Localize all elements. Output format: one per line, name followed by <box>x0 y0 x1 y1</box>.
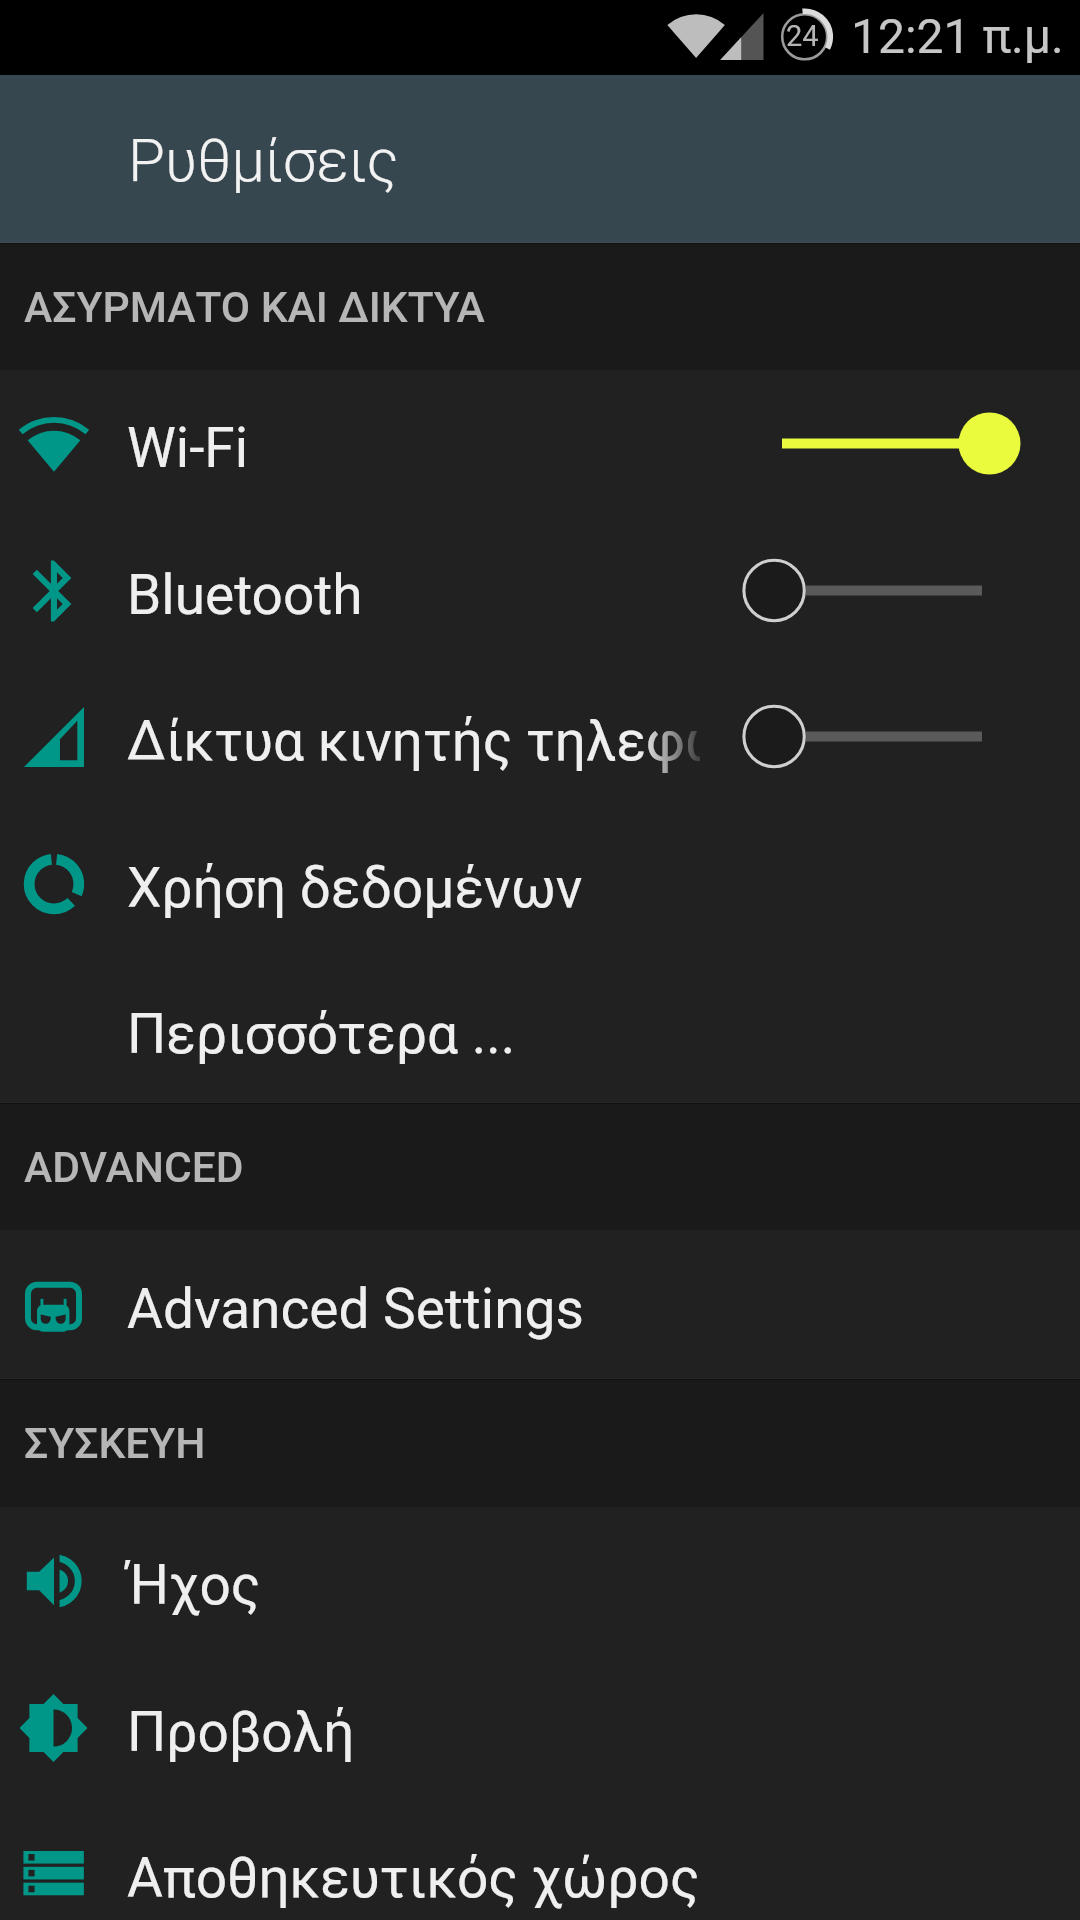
staticText: Χρήση δεδομένων <box>127 856 583 920</box>
staticText: Δίκτυα κινητής τηλεφωνίας <box>127 709 700 773</box>
button[interactable]: Χρήση δεδομένων <box>0 810 1080 957</box>
staticText: 12:21 π.μ. <box>851 8 1064 64</box>
button[interactable]: Ήχος <box>0 1507 1080 1654</box>
staticText: Αποθηκευτικός χώρος <box>127 1846 700 1910</box>
staticText: Bluetooth <box>127 563 363 627</box>
button[interactable]: Περισσότερα ... <box>0 956 1080 1103</box>
staticText: Wi-Fi <box>127 416 249 480</box>
button[interactable]: Toggle off <box>750 517 1080 664</box>
staticText: Ήχος <box>127 1553 261 1617</box>
button[interactable]: Αποθηκευτικός χώρος <box>0 1800 1080 1920</box>
staticText: Προβολή <box>127 1700 355 1764</box>
staticText: ΑΣΥΡΜΑΤΟ ΚΑΙ ΔΙΚΤΥΑ <box>24 283 485 333</box>
staticText: Ρυθμίσεις <box>128 125 399 195</box>
button[interactable]: Ρυθμίσεις <box>0 75 1080 243</box>
staticText: 24 <box>786 19 819 53</box>
button[interactable]: Bluetooth <box>0 517 1080 664</box>
staticText: Περισσότερα ... <box>127 1002 516 1066</box>
button[interactable]: Toggle on <box>750 370 1080 517</box>
button[interactable]: Advanced Settings <box>0 1230 1080 1379</box>
button[interactable]: Wi-Fi <box>0 370 1080 517</box>
button[interactable]: Δίκτυα κινητής τηλεφωνίας <box>0 663 1080 810</box>
staticText: ADVANCED <box>24 1143 244 1193</box>
button[interactable]: Προβολή <box>0 1654 1080 1801</box>
button[interactable]: Toggle off <box>750 663 1080 810</box>
staticText: ΣΥΣΚΕΥΗ <box>24 1419 206 1469</box>
staticText: Advanced Settings <box>127 1277 584 1341</box>
